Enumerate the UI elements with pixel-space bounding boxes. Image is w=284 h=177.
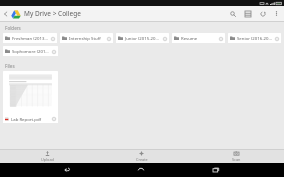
button[interactable]: Home — [134, 163, 148, 177]
button[interactable]: Folder actions — [274, 36, 279, 41]
staticText: Folders — [5, 25, 21, 31]
staticText: Lab Report.pdf — [11, 116, 51, 122]
staticText: Senior (2016-2017) — [237, 35, 273, 41]
button[interactable]: Folder actions — [162, 36, 167, 41]
button[interactable]: Freshman (2013-2014) — [3, 33, 57, 43]
button[interactable]: Folder actions — [51, 49, 56, 54]
button[interactable]: Internship Stuff — [60, 33, 113, 43]
staticText: Sophomore (2014-2015) — [12, 48, 50, 54]
button[interactable]: Refresh — [257, 8, 268, 19]
button[interactable]: Switch view — [242, 8, 253, 19]
button[interactable]: File actions — [51, 116, 56, 121]
staticText: Junior (2015-2016) — [125, 35, 161, 41]
staticText: Resume — [181, 35, 217, 41]
staticText: Freshman (2013-2014) — [12, 35, 49, 41]
button[interactable]: Create — [94, 150, 189, 163]
button[interactable]: Resume — [172, 33, 225, 43]
staticText: Files — [5, 63, 15, 69]
staticText: My Drive > College — [24, 9, 81, 18]
button[interactable]: Folder actions — [218, 36, 223, 41]
button[interactable]: Scan — [189, 150, 284, 163]
button[interactable]: Search — [227, 8, 238, 19]
button[interactable]: Senior (2016-2017) — [228, 33, 281, 43]
button[interactable]: Sophomore (2014-2015) — [3, 46, 58, 56]
button[interactable]: Lab Report.pdf — [3, 71, 58, 123]
button[interactable]: More options — [271, 8, 282, 19]
button[interactable]: Folder actions — [106, 36, 111, 41]
staticText: Scan — [232, 157, 241, 162]
button[interactable]: Upload — [0, 150, 94, 163]
staticText: Create — [136, 157, 148, 162]
button[interactable]: Junior (2015-2016) — [116, 33, 169, 43]
staticText: Upload — [41, 157, 54, 162]
button[interactable]: Back — [60, 163, 74, 177]
button[interactable]: Navigate up — [2, 10, 10, 18]
button[interactable]: Recent apps — [209, 163, 223, 177]
button[interactable]: Folder actions — [50, 36, 55, 41]
staticText: Internship Stuff — [69, 35, 105, 41]
